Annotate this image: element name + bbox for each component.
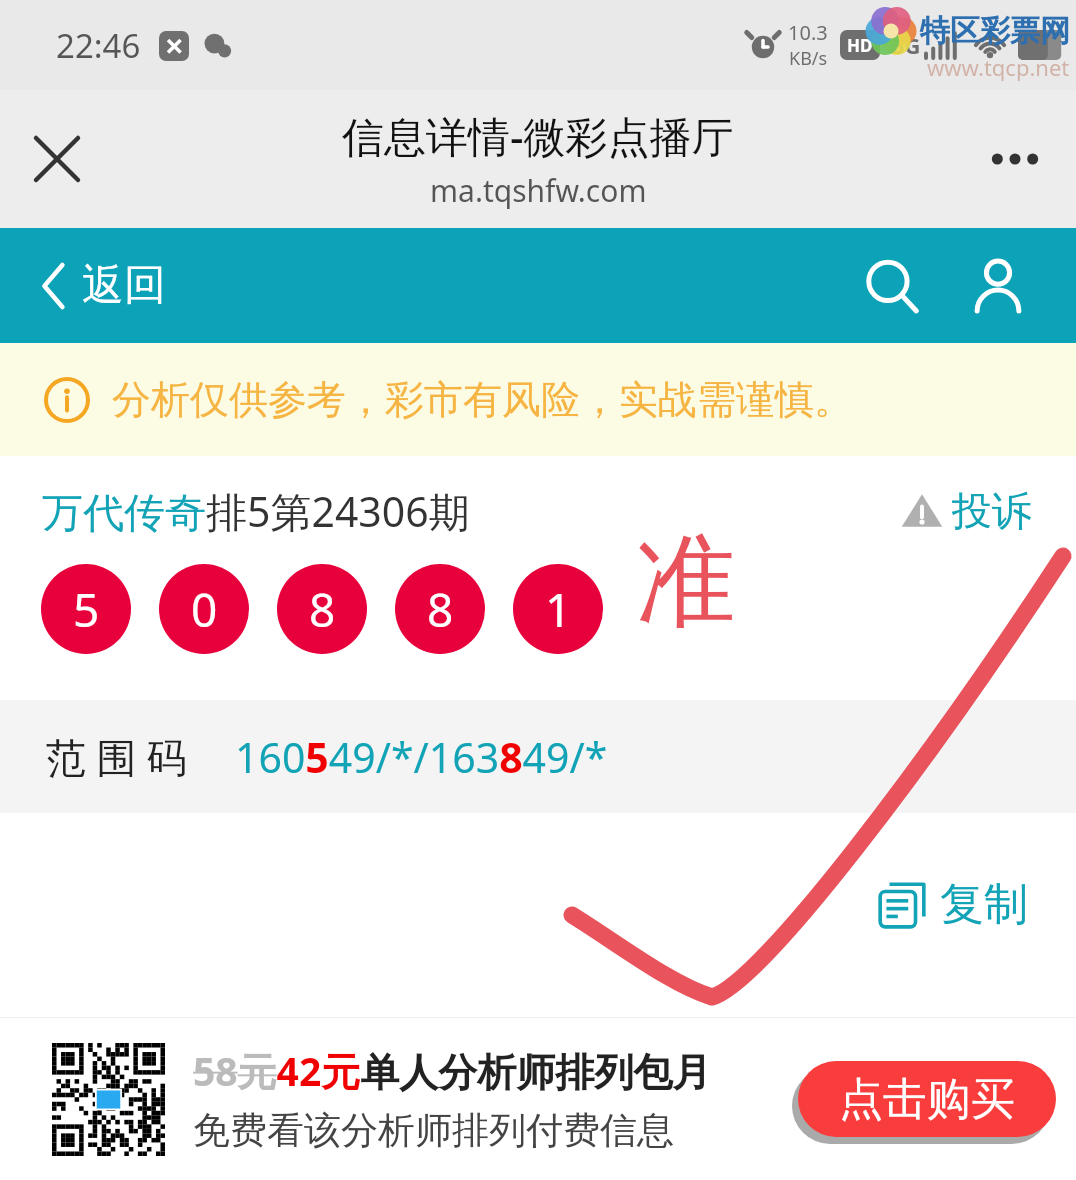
staticText: 投诉 [952,486,1032,536]
staticText: 22:46 [56,23,141,68]
staticText: 1 [545,578,572,641]
staticText: ma.tqshfw.com [430,170,647,211]
staticText: 返回 [82,259,166,312]
button[interactable]: Close [28,130,86,188]
staticText: 免费看该分析师排列付费信息 [193,1107,674,1154]
staticText: KB/s [789,46,828,71]
staticText: 信息详情-微彩点播厅 [342,107,734,164]
staticText: 8 [427,578,454,641]
button[interactable]: Search [850,244,934,328]
staticText: www.tqcp.net [927,52,1070,82]
staticText: 160549/*/163849/* [235,729,608,785]
staticText: 分析仅供参考，彩市有风险，实战需谨慎。 [112,375,853,424]
staticText: 范 围 码 [46,729,187,784]
button[interactable]: 返回 [36,251,172,320]
staticText: HD [847,34,873,57]
staticText: 点击购买 [839,1072,1015,1127]
staticText: 复制 [940,877,1028,932]
button[interactable]: More options [984,128,1046,190]
staticText: 10.3 [788,19,828,46]
staticText: 准 [636,520,736,646]
staticText: 58元42元单人分析师排列包月 [193,1044,712,1097]
staticText: 8 [309,578,336,641]
staticText: 5 [73,578,100,641]
staticText: 0 [191,578,218,641]
staticText: 5G [892,30,921,60]
button[interactable]: 点击购买 [798,1061,1056,1137]
staticText: 万代传奇排5第24306期 [42,483,470,539]
button[interactable]: 复制 [870,871,1034,938]
button[interactable]: Account [956,244,1040,328]
staticText: 特区彩票网 [920,12,1070,50]
button[interactable]: 投诉 [896,482,1036,540]
